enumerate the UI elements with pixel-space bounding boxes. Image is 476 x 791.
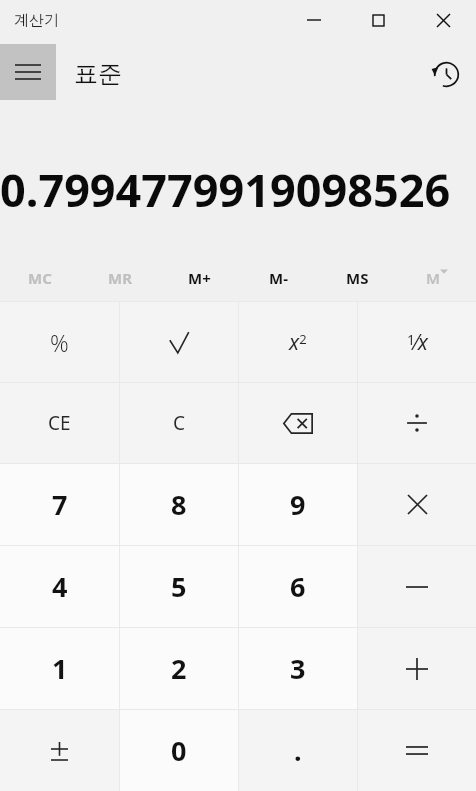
button[interactable]: Backspace [239, 383, 357, 463]
staticText: 0.79947799190985264 [0, 159, 458, 220]
staticText: 8 [171, 486, 187, 523]
staticText: 0 [171, 732, 187, 769]
button[interactable]: MC [0, 255, 80, 301]
button[interactable]: Positive negative [0, 710, 119, 791]
staticText: 6 [290, 568, 306, 605]
staticText: M+ [188, 268, 211, 288]
button[interactable]: CE [0, 383, 119, 463]
button[interactable]: Square root [120, 302, 238, 382]
button[interactable]: % [0, 302, 119, 382]
other: Multiply [408, 495, 427, 514]
button[interactable]: 4 [0, 546, 119, 627]
button[interactable]: Memory options [397, 255, 476, 301]
button[interactable]: C [120, 383, 238, 463]
staticText: 2 [171, 650, 187, 687]
button[interactable]: Maximize [346, 0, 410, 40]
staticText: . [294, 732, 302, 769]
staticText: 7 [52, 486, 68, 523]
button[interactable]: 5 [120, 546, 238, 627]
button[interactable]: 3 [239, 628, 357, 709]
staticText: 표준 [74, 59, 122, 89]
button[interactable]: History [422, 50, 470, 98]
button[interactable]: Divide [358, 383, 476, 463]
button[interactable]: Open navigation menu [0, 44, 56, 100]
button[interactable]: Add [358, 628, 476, 709]
button[interactable]: MS [318, 255, 397, 301]
button[interactable]: 6 [239, 546, 357, 627]
other: Backspace [283, 413, 313, 434]
staticText: CE [48, 410, 71, 436]
button[interactable]: 9 [239, 464, 357, 545]
button[interactable]: Equals [358, 710, 476, 791]
button[interactable]: 1 [0, 628, 119, 709]
button[interactable]: Close [410, 0, 476, 40]
staticText: 1⁄x [407, 328, 428, 357]
staticText: x2 [289, 328, 307, 357]
button[interactable]: MR [80, 255, 160, 301]
staticText: % [50, 327, 69, 358]
button[interactable]: 7 [0, 464, 119, 545]
button[interactable]: 1⁄x [358, 302, 476, 382]
staticText: 9 [290, 486, 306, 523]
other: Divide [406, 412, 428, 434]
button[interactable]: M+ [160, 255, 239, 301]
other: Add [406, 658, 428, 680]
staticText: 4 [52, 568, 68, 605]
staticText: MC [28, 268, 52, 288]
button[interactable]: . [239, 710, 357, 791]
staticText: 1 [52, 650, 68, 687]
other: Square root [169, 331, 190, 354]
button[interactable]: 2 [120, 628, 238, 709]
staticText: M [426, 268, 440, 288]
staticText: M- [269, 268, 288, 288]
staticText: C [173, 410, 186, 436]
other: Equals [406, 745, 428, 756]
staticText: 5 [171, 568, 187, 605]
staticText: MR [108, 268, 132, 288]
button[interactable]: 0 [120, 710, 238, 791]
button[interactable]: Multiply [358, 464, 476, 545]
button[interactable]: Minimize [282, 0, 346, 40]
other: Positive negative [51, 741, 68, 761]
button[interactable]: 8 [120, 464, 238, 545]
other: Subtract [406, 585, 428, 589]
staticText: 계산기 [14, 11, 59, 30]
staticText: MS [346, 268, 369, 288]
button[interactable]: M- [239, 255, 318, 301]
button[interactable]: x2 [239, 302, 357, 382]
button[interactable]: Subtract [358, 546, 476, 627]
staticText: 3 [290, 650, 306, 687]
